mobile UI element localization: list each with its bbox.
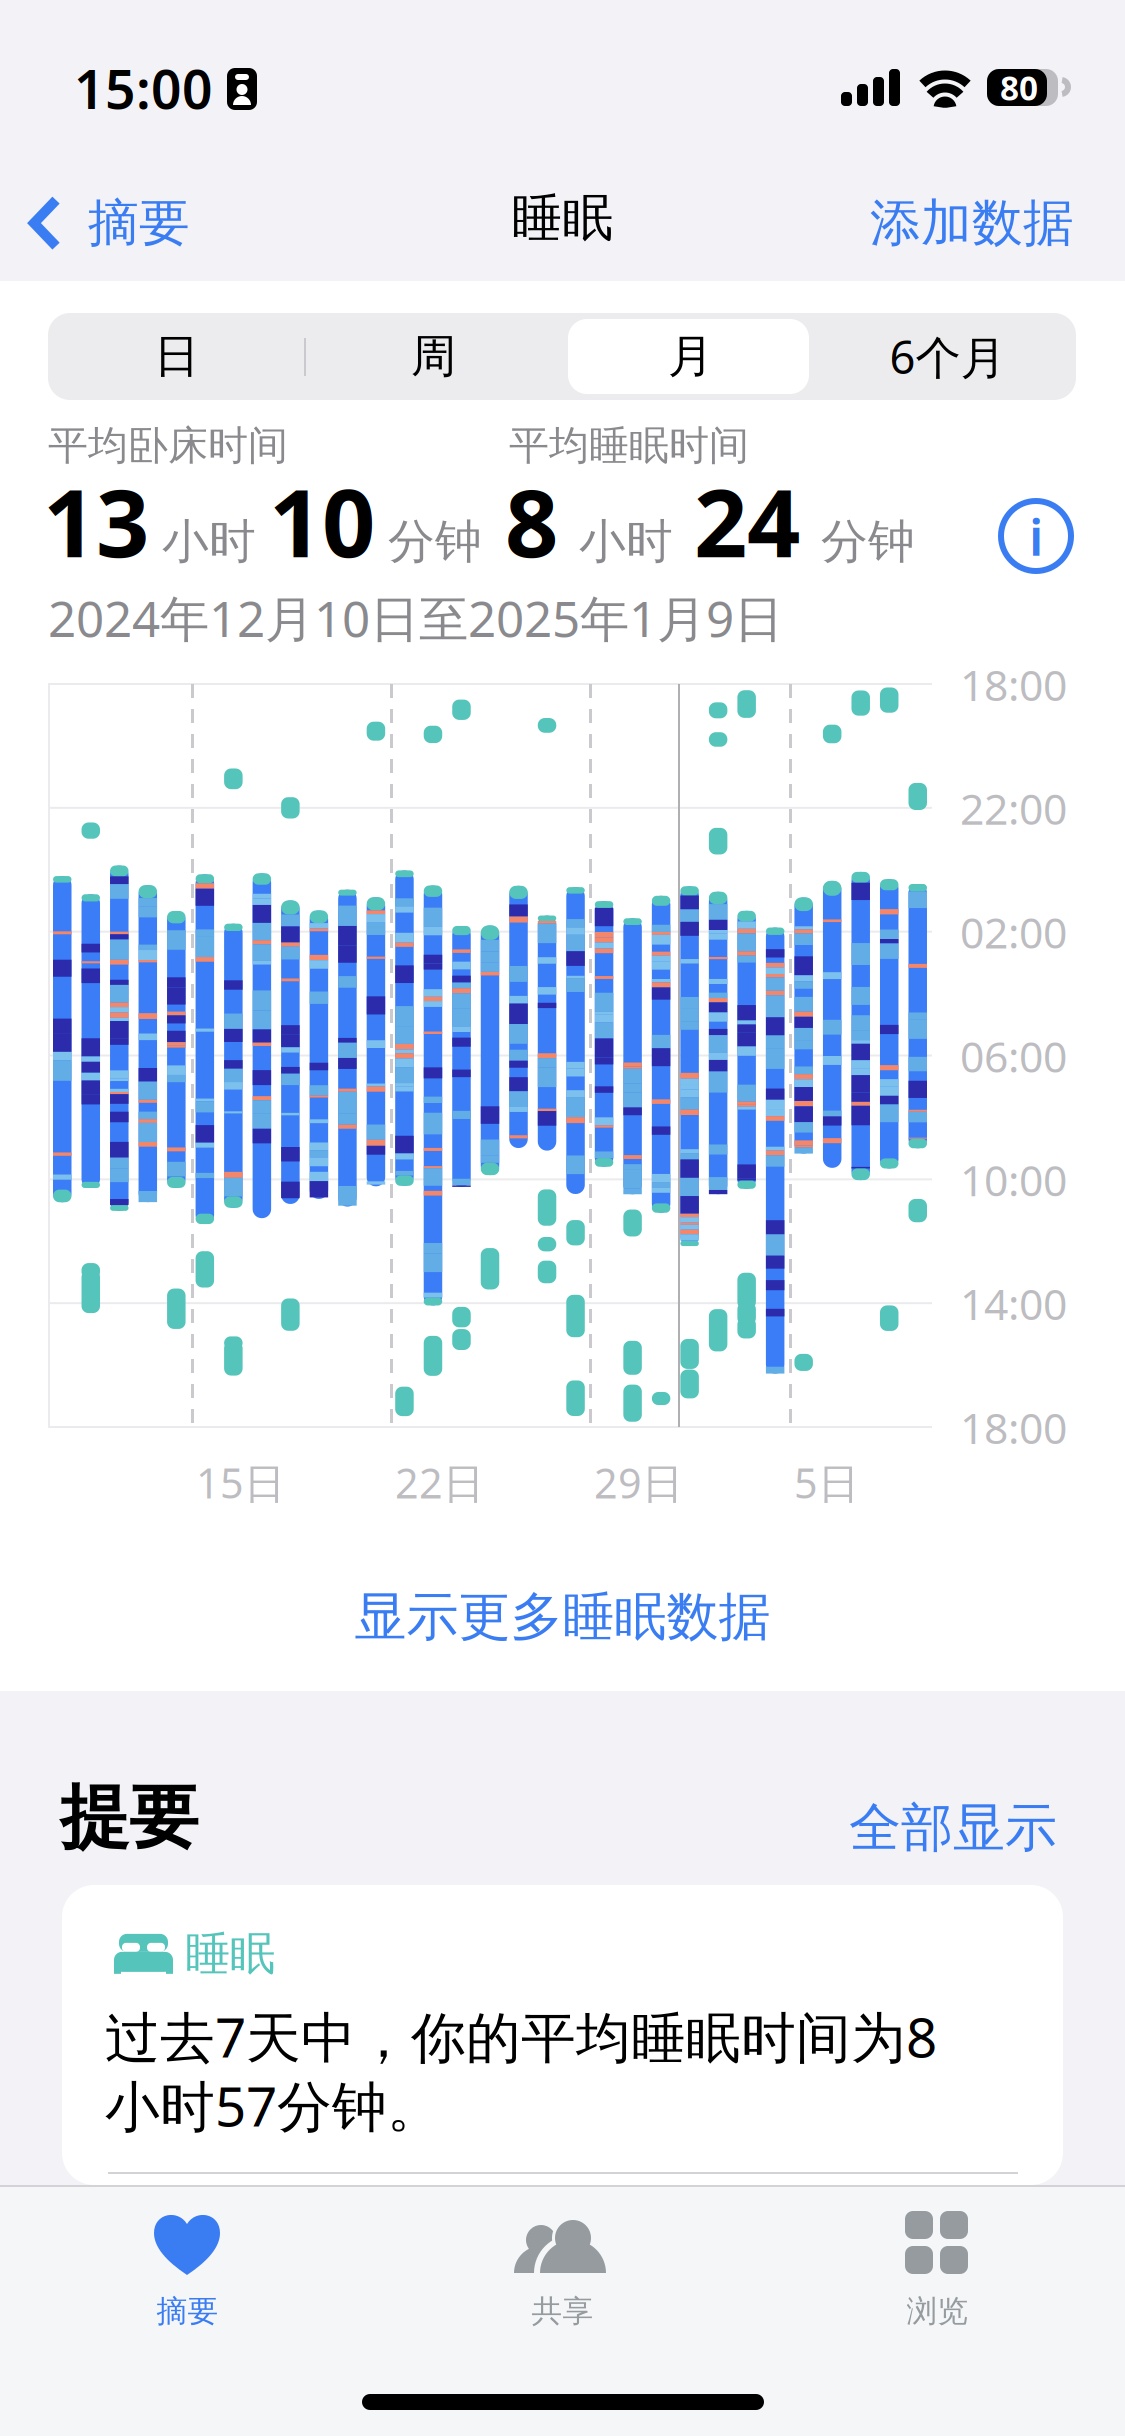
staticText: 15:00 [74,53,213,124]
staticText: 22日 [395,1455,484,1510]
staticText: 提要 [60,1775,198,1860]
staticText: 14:00 [960,1275,1067,1332]
staticText: 周 [411,329,456,384]
staticText: 分钟 [388,513,482,570]
staticText: 8 [505,459,558,583]
staticText: 小时57分钟。 [105,2069,442,2142]
staticText: 小时 [579,513,673,570]
staticText: 平均睡眠时间 [509,421,749,470]
button[interactable]: 摘要 [28,178,190,268]
staticText: 睡眠 [185,1926,275,1982]
staticText: 睡眠 [511,187,613,249]
button[interactable]: 共享 [375,2190,750,2360]
staticText: 显示更多睡眠数据 [354,1585,770,1649]
staticText: 10 [269,459,375,583]
staticText: 日 [154,329,199,384]
staticText: 平均卧床时间 [48,421,288,470]
button[interactable]: 添加数据 [870,178,1074,268]
staticText: 5日 [794,1455,859,1510]
button[interactable]: 摘要 [0,2190,375,2360]
staticText: 分钟 [821,513,915,570]
button[interactable]: 6个月 [819,313,1076,400]
staticText: 月 [668,329,713,384]
staticText: 摘要 [88,192,190,254]
staticText: 29日 [594,1455,683,1510]
button[interactable]: 周 [305,313,562,400]
staticText: 6个月 [889,326,1005,387]
staticText: 24 [694,459,800,583]
staticText: 10:00 [960,1151,1067,1208]
staticText: 过去7天中，你的平均睡眠时间为8 [105,2000,937,2073]
button[interactable]: 日 [48,313,305,400]
button[interactable]: 信息 [999,499,1073,573]
staticText: 18:00 [960,1399,1067,1456]
staticText: 13 [43,459,149,583]
staticText: 2024年12月10日至2025年1月9日 [48,585,783,650]
staticText: 06:00 [960,1027,1067,1084]
staticText: 共享 [531,2292,593,2330]
button[interactable]: 显示更多睡眠数据 [0,1552,1125,1682]
staticText: 添加数据 [870,192,1074,254]
staticText: 浏览 [906,2292,968,2330]
staticText: 18:00 [960,656,1067,713]
staticText: i [1029,502,1043,570]
button[interactable]: 全部显示 [837,1784,1069,1872]
staticText: 02:00 [960,904,1067,960]
button[interactable]: 浏览 [750,2190,1125,2360]
staticText: 小时 [162,513,256,570]
staticText: 摘要 [156,2292,218,2330]
button[interactable]: 月 [562,313,819,400]
staticText: 80 [1000,65,1038,110]
staticText: 全部显示 [849,1796,1057,1860]
staticText: 22:00 [960,780,1067,836]
staticText: 15日 [196,1455,285,1510]
